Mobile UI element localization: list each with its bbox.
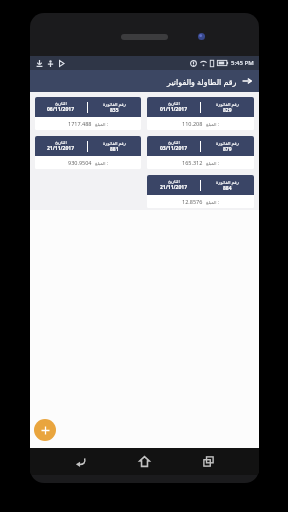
staticText: التاريخ (55, 140, 67, 145)
button[interactable]: التاريخ (147, 136, 254, 169)
staticText: المبلغ : (206, 160, 219, 166)
button[interactable]: Forward (239, 73, 255, 89)
button[interactable]: Recent apps (195, 448, 222, 475)
button[interactable]: التاريخ (35, 136, 141, 169)
staticText: 835 (110, 107, 119, 114)
staticText: رقم الفاتورة (103, 140, 126, 146)
staticText: المبلغ : (206, 121, 219, 127)
staticText: 881 (110, 146, 119, 153)
staticText: 884 (223, 185, 232, 192)
staticText: 12.8576 (182, 198, 203, 205)
staticText: 21/11/2017 (160, 184, 188, 191)
button[interactable]: التاريخ (147, 97, 254, 130)
staticText: 1717.488 (68, 120, 92, 127)
staticText: 06/11/2017 (47, 106, 75, 113)
staticText: 165.312 (182, 159, 203, 166)
staticText: 879 (223, 146, 232, 153)
staticText: رقم الفاتورة (216, 101, 239, 107)
staticText: 5:45 PM (231, 59, 254, 67)
staticText: المبلغ : (95, 121, 108, 127)
staticText: 110.208 (182, 120, 203, 127)
button[interactable]: التاريخ (147, 175, 254, 208)
staticText: التاريخ (168, 179, 180, 184)
button[interactable]: Back (67, 448, 94, 475)
staticText: 01/11/2017 (160, 106, 188, 113)
staticText: 03/11/2017 (160, 145, 188, 152)
staticText: التاريخ (168, 140, 180, 145)
button[interactable]: Add (34, 419, 56, 441)
staticText: المبلغ : (95, 160, 108, 166)
staticText: المبلغ : (206, 199, 219, 205)
staticText: رقم الفاتورة (216, 179, 239, 185)
staticText: التاريخ (168, 101, 180, 106)
staticText: التاريخ (55, 101, 67, 106)
staticText: رقم الطاولة والفواتير (167, 76, 237, 87)
staticText: 930.9504 (68, 159, 92, 166)
staticText: 21/11/2017 (47, 145, 75, 152)
button[interactable]: Home (131, 448, 158, 475)
staticText: رقم الفاتورة (103, 101, 126, 107)
button[interactable]: التاريخ (35, 97, 141, 130)
staticText: 829 (223, 107, 232, 114)
staticText: رقم الفاتورة (216, 140, 239, 146)
